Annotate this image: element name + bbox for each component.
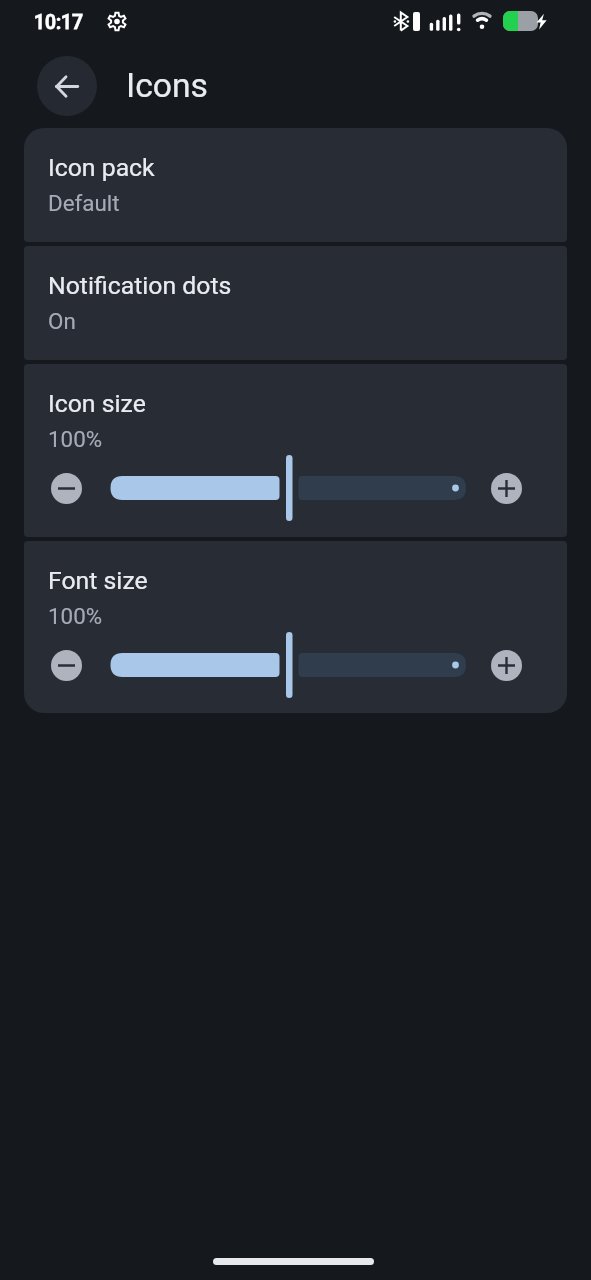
staticText: 10:17 [34, 11, 83, 34]
staticText: Icon pack [48, 153, 155, 182]
button[interactable]: Decrease icon size [51, 650, 82, 681]
button[interactable]: Increase icon size [491, 650, 522, 681]
staticText: Default [48, 190, 120, 216]
staticText: 100% [48, 426, 103, 452]
button[interactable]: Back [37, 56, 97, 116]
staticText: Font size [48, 566, 148, 595]
button[interactable]: Increase icon size [491, 473, 522, 504]
button[interactable] [24, 246, 567, 360]
staticText: Notification dots [48, 271, 232, 300]
button[interactable]: Decrease icon size [51, 473, 82, 504]
staticText: Icon size [48, 389, 146, 418]
staticText: On [48, 308, 76, 334]
staticText: Icons [126, 66, 208, 105]
button[interactable] [24, 128, 567, 242]
staticText: 100% [48, 603, 103, 629]
button[interactable] [24, 541, 567, 713]
button[interactable] [24, 364, 567, 537]
